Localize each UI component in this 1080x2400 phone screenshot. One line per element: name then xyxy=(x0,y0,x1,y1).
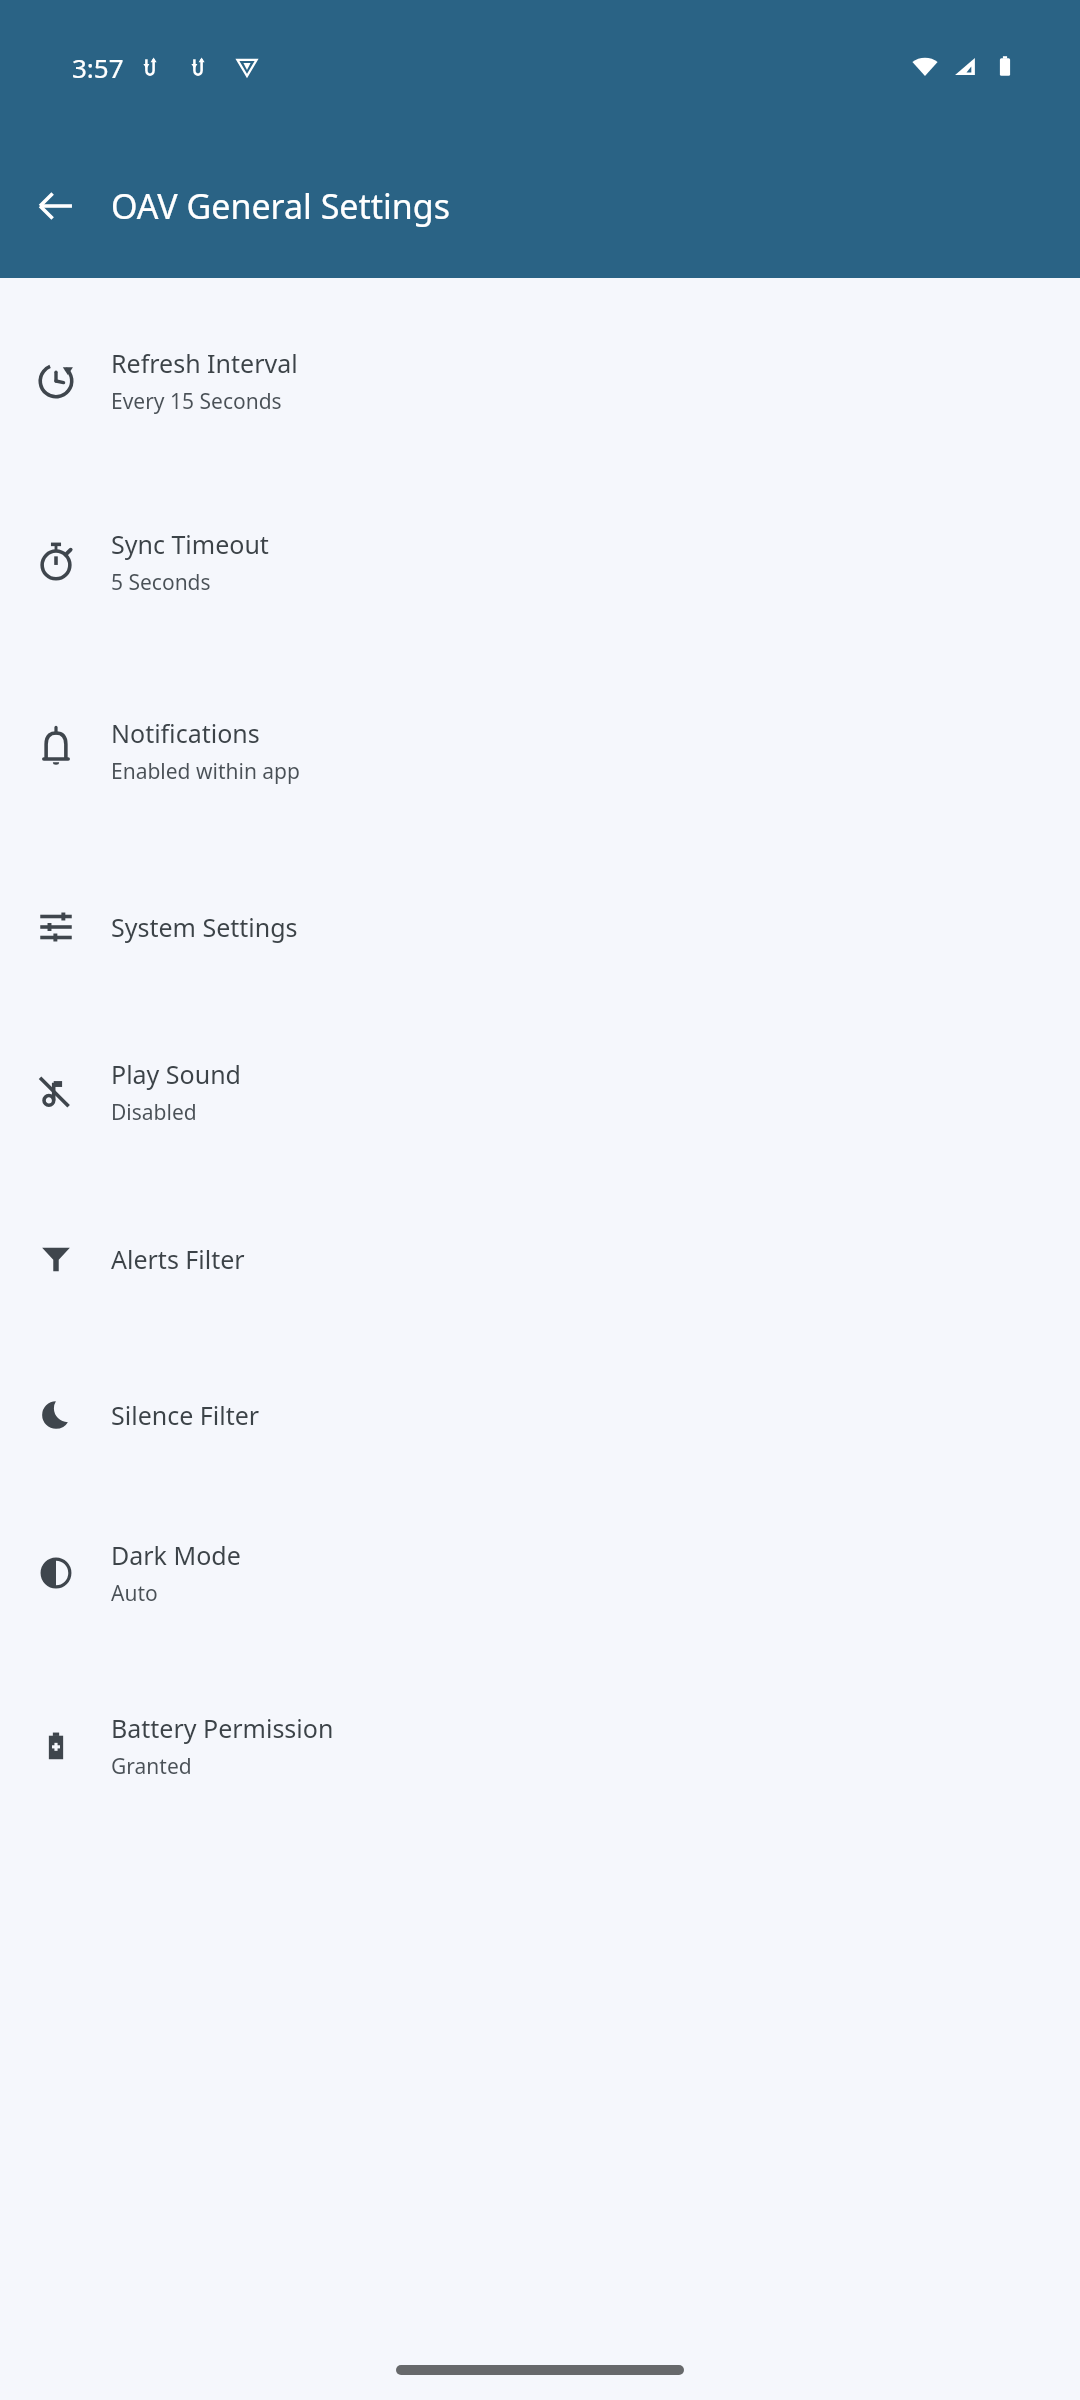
staticText: System Settings xyxy=(111,910,298,944)
button[interactable]: Sync Timeout xyxy=(0,467,1080,656)
staticText: 5 Seconds xyxy=(111,568,211,597)
button[interactable]: Alerts Filter xyxy=(0,1176,1080,1342)
button[interactable]: Battery Permission xyxy=(0,1658,1080,1833)
staticText: OAV General Settings xyxy=(111,183,451,229)
staticText: Every 15 Seconds xyxy=(111,387,282,416)
staticText: Silence Filter xyxy=(111,1398,260,1432)
staticText: Notifications xyxy=(111,716,260,750)
button[interactable]: Back xyxy=(0,134,111,278)
staticText: Sync Timeout xyxy=(111,527,269,561)
staticText: 3:57 xyxy=(72,50,124,85)
staticText: Dark Mode xyxy=(111,1538,241,1572)
staticText: Refresh Interval xyxy=(111,346,298,380)
staticText: Alerts Filter xyxy=(111,1242,245,1276)
button[interactable]: Play Sound xyxy=(0,1008,1080,1176)
staticText: Granted xyxy=(111,1752,192,1781)
button[interactable]: System Settings xyxy=(0,845,1080,1008)
button[interactable]: Dark Mode xyxy=(0,1488,1080,1658)
button[interactable]: Refresh Interval xyxy=(0,294,1080,467)
staticText: Auto xyxy=(111,1579,158,1608)
staticText: Enabled within app xyxy=(111,757,300,786)
staticText: Battery Permission xyxy=(111,1711,334,1745)
button[interactable]: Notifications xyxy=(0,656,1080,845)
button[interactable]: Silence Filter xyxy=(0,1342,1080,1488)
staticText: Play Sound xyxy=(111,1057,241,1091)
staticText: Disabled xyxy=(111,1098,197,1127)
